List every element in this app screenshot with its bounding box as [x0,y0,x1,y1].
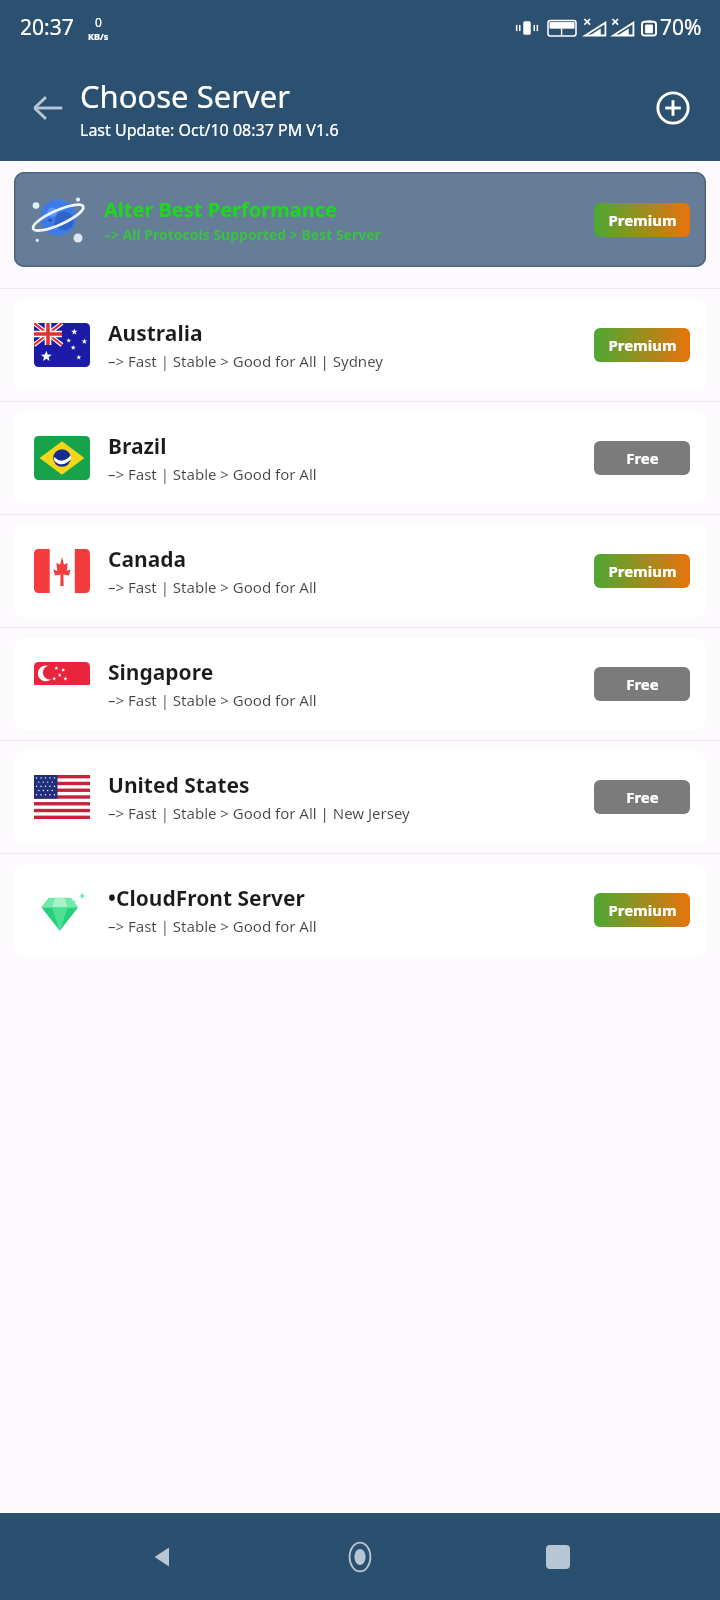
staticText: 70% [660,13,702,42]
button[interactable]: Alter Best Performance [14,172,706,267]
staticText: •CloudFront Server [108,884,305,913]
button[interactable]: Back [22,82,74,134]
button[interactable]: •CloudFront Server [14,864,706,956]
staticText: Singapore [108,658,214,687]
staticText: –> Fast | Stable > Good for All [108,690,317,710]
staticText: KB/s [88,30,109,42]
staticText: Brazil [108,432,167,461]
button[interactable]: Back [128,1522,198,1592]
staticText: –> Fast | Stable > Good for All | Sydney [108,351,383,371]
button[interactable]: Add server [648,83,698,133]
button[interactable]: Free [594,667,690,701]
button[interactable]: Australia [14,299,706,391]
staticText: 20:37 [20,13,74,42]
button[interactable]: Free [594,441,690,475]
button[interactable]: Free [594,780,690,814]
button[interactable]: Recent apps [523,1522,593,1592]
staticText: –> All Protocols Supported > Best Server [104,225,381,244]
staticText: Free [626,448,659,468]
staticText: –> Fast | Stable > Good for All [108,577,317,597]
staticText: Premium [608,335,677,355]
staticText: United States [108,771,250,800]
staticText: Premium [608,561,677,581]
staticText: –> Fast | Stable > Good for All [108,916,317,936]
button[interactable]: Premium [594,203,690,237]
staticText: 0 [95,14,102,30]
staticText: Premium [608,210,677,230]
staticText: Choose Server [80,75,290,117]
button[interactable]: Brazil [14,412,706,504]
staticText: Last Update: Oct/10 08:37 PM V1.6 [80,119,339,141]
staticText: –> Fast | Stable > Good for All [108,464,317,484]
staticText: Alter Best Performance [104,196,337,223]
button[interactable]: Canada [14,525,706,617]
staticText: –> Fast | Stable > Good for All | New Je… [108,803,410,823]
button[interactable]: Premium [594,893,690,927]
button[interactable]: Home [325,1522,395,1592]
button[interactable]: Premium [594,554,690,588]
button[interactable]: United States [14,751,706,843]
staticText: Free [626,787,659,807]
staticText: Australia [108,319,203,348]
staticText: Premium [608,900,677,920]
button[interactable]: Premium [594,328,690,362]
staticText: Free [626,674,659,694]
staticText: Canada [108,545,187,574]
button[interactable]: Singapore [14,638,706,730]
